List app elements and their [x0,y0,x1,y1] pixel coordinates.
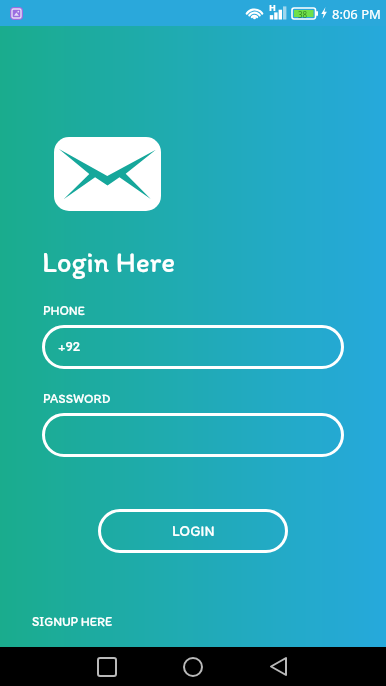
button[interactable] [42,413,344,457]
button[interactable]: LOGIN [98,509,288,553]
button[interactable]: Back [256,647,300,686]
staticText: Login Here [42,244,176,279]
staticText: +92 [58,338,81,355]
button[interactable]: SIGNUP HERE [32,614,113,630]
staticText: H [269,1,276,13]
button[interactable]: Home [171,647,215,686]
button[interactable]: +92 [42,325,344,369]
staticText: PHONE [43,303,85,319]
staticText: 38 [298,9,308,20]
button[interactable]: Recents [85,647,129,686]
staticText: 8:06 PM [332,5,381,23]
staticText: PASSWORD [43,391,111,407]
staticText: SIGNUP HERE [32,614,113,630]
staticText: LOGIN [172,522,215,540]
